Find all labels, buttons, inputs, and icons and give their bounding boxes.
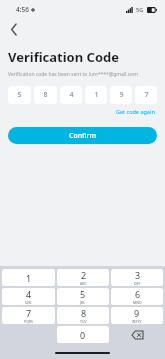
button[interactable]: 2 [57, 269, 109, 286]
staticText: 7 [26, 307, 32, 319]
staticText: 5 [17, 90, 22, 100]
button[interactable]: 9 [110, 86, 132, 104]
staticText: ABC [80, 281, 87, 286]
button[interactable]: 7 [135, 86, 157, 104]
staticText: Get code again [116, 108, 155, 115]
staticText: DEF [134, 281, 141, 286]
button[interactable]: 4 [2, 288, 55, 305]
staticText: 8 [81, 307, 87, 319]
button[interactable]: 1 [85, 86, 107, 104]
button[interactable]: Confirm [8, 127, 157, 144]
staticText: 0 [80, 329, 86, 341]
staticText: GHI [25, 300, 32, 305]
staticText: 7 [144, 90, 149, 100]
staticText: MNO [133, 300, 142, 305]
staticText: Verification code has been sent to lum**… [8, 71, 138, 78]
staticText: WXYZ [132, 319, 142, 324]
staticText: 9 [134, 307, 140, 319]
staticText: 1 [26, 272, 32, 284]
staticText: 4:56 [16, 5, 29, 14]
staticText: 4 [26, 288, 32, 300]
button[interactable]: 8 [57, 307, 109, 324]
staticText: 6 [135, 288, 141, 300]
staticText: 2 [81, 269, 87, 281]
button[interactable]: 5 [57, 288, 109, 305]
button[interactable]: 4 [60, 86, 82, 104]
staticText: Confirm [69, 131, 97, 141]
button[interactable]: Get code again [114, 107, 157, 116]
staticText: 5G [136, 6, 144, 13]
button[interactable]: 0 [57, 326, 109, 343]
button[interactable]: 3 [111, 269, 163, 286]
staticText: 4 [69, 90, 74, 100]
button[interactable]: 7 [2, 307, 55, 324]
button[interactable]: 8 [34, 86, 57, 104]
staticText: 9 [119, 90, 124, 100]
staticText: 8 [43, 90, 48, 100]
button[interactable]: 9 [111, 307, 163, 324]
button[interactable]: 5 [8, 86, 31, 104]
staticText: 1 [94, 90, 99, 100]
staticText: JKL [80, 300, 86, 305]
staticText: 3 [135, 269, 141, 281]
staticText: 5 [80, 288, 86, 300]
button[interactable]: 1 [2, 269, 55, 286]
button[interactable]: Back [5, 20, 23, 38]
button[interactable]: 6 [111, 288, 163, 305]
button[interactable]: Backspace [111, 326, 163, 343]
staticText: Verification Code [8, 48, 119, 66]
staticText: TUV [80, 319, 87, 324]
staticText: PQRS [24, 319, 34, 324]
